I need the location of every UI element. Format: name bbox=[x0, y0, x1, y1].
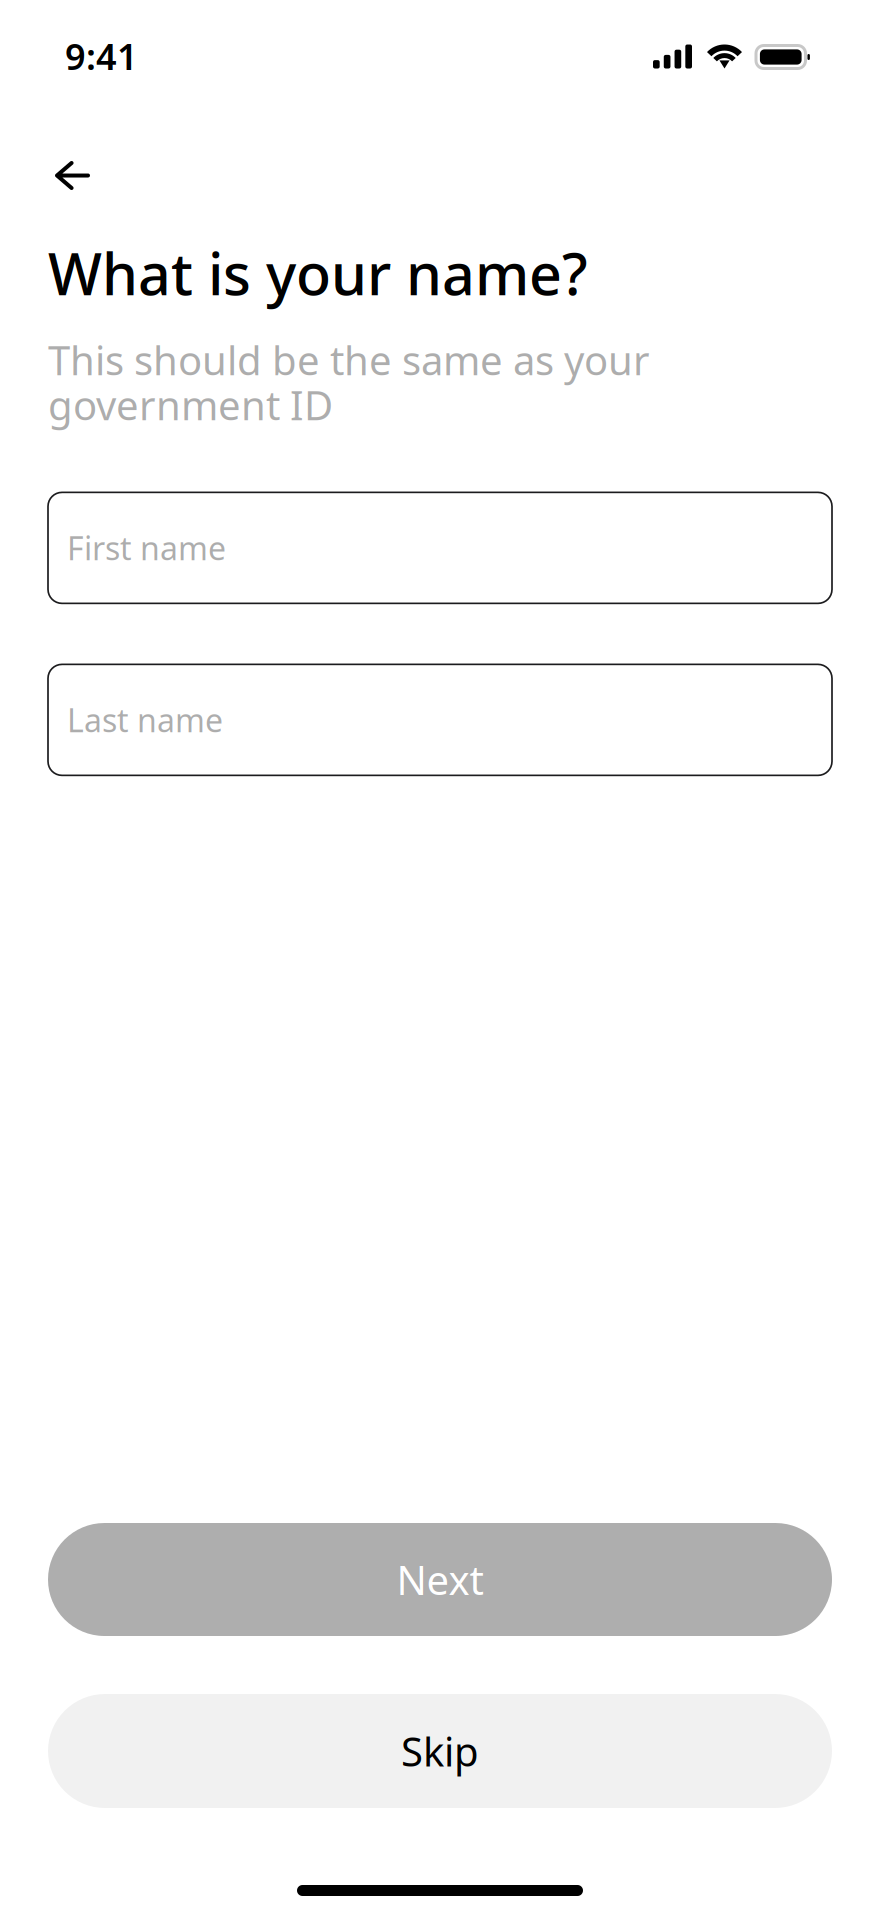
button[interactable]: Back bbox=[0, 110, 128, 214]
staticText: First name bbox=[67, 527, 226, 569]
staticText: Last name bbox=[67, 699, 223, 741]
staticText: Next bbox=[396, 1553, 483, 1606]
staticText: This should be the same as your governme… bbox=[48, 333, 650, 431]
button[interactable]: Last name bbox=[48, 664, 832, 775]
staticText: Skip bbox=[401, 1724, 479, 1777]
staticText: What is your name? bbox=[48, 235, 588, 311]
button[interactable]: Skip bbox=[48, 1694, 832, 1808]
button[interactable]: Next bbox=[48, 1523, 832, 1636]
button[interactable]: First name bbox=[48, 492, 832, 603]
staticText: 9:41 bbox=[65, 32, 138, 80]
